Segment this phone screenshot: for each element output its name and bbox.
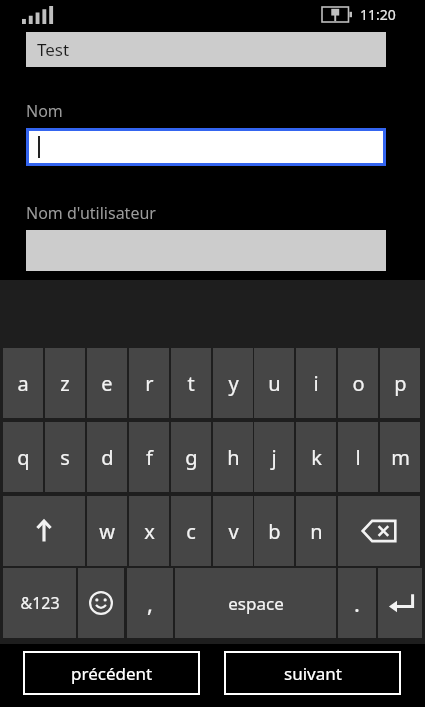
button[interactable]: d xyxy=(87,422,127,492)
button[interactable]: j xyxy=(254,422,294,492)
button[interactable]: q xyxy=(3,422,43,492)
button[interactable]: z xyxy=(45,348,85,418)
staticText: v xyxy=(228,518,239,545)
button[interactable]: k xyxy=(296,422,336,492)
staticText: i xyxy=(313,370,319,397)
button[interactable]: b xyxy=(254,496,294,566)
staticText: &123 xyxy=(20,592,60,614)
button[interactable]: x xyxy=(129,496,169,566)
button[interactable]: m xyxy=(380,422,420,492)
button[interactable]: suivant xyxy=(224,651,401,695)
button[interactable]: i xyxy=(296,348,336,418)
button[interactable]: e xyxy=(87,348,127,418)
button[interactable]: y xyxy=(213,348,253,418)
staticText: j xyxy=(271,444,277,471)
button[interactable]: r xyxy=(129,348,169,418)
staticText: o xyxy=(352,370,365,397)
staticText: u xyxy=(268,370,281,397)
staticText: k xyxy=(311,444,322,471)
button[interactable]: c xyxy=(171,496,211,566)
staticText: t xyxy=(187,370,195,397)
button[interactable]: Emoji xyxy=(78,568,124,638)
staticText: y xyxy=(228,370,239,397)
staticText: espace xyxy=(228,592,284,615)
staticText: a xyxy=(17,370,29,397)
button[interactable]: Backspace xyxy=(338,496,420,566)
staticText: e xyxy=(101,370,113,397)
button[interactable]: t xyxy=(171,348,211,418)
staticText: c xyxy=(186,518,196,545)
button[interactable]: h xyxy=(213,422,253,492)
button[interactable]: Shift xyxy=(3,496,85,566)
staticText: Test xyxy=(37,38,70,61)
staticText: précédent xyxy=(71,662,153,685)
button[interactable]: , xyxy=(127,568,173,638)
staticText: w xyxy=(99,518,115,545)
staticText: z xyxy=(60,370,70,397)
staticText: . xyxy=(354,588,360,618)
staticText: l xyxy=(355,444,361,471)
button[interactable]: Enter xyxy=(378,568,422,638)
staticText: m xyxy=(391,444,410,471)
button[interactable]: Test xyxy=(26,32,386,67)
button[interactable]: f xyxy=(129,422,169,492)
button[interactable]: g xyxy=(171,422,211,492)
button[interactable]: l xyxy=(338,422,378,492)
button[interactable]: &123 xyxy=(3,568,76,638)
staticText: h xyxy=(227,444,240,471)
button[interactable]: espace xyxy=(175,568,336,638)
button[interactable]: p xyxy=(380,348,420,418)
button[interactable]: . xyxy=(338,568,376,638)
staticText: g xyxy=(185,444,198,471)
button[interactable]: v xyxy=(213,496,253,566)
staticText: suivant xyxy=(284,662,342,685)
staticText: r xyxy=(145,370,154,397)
staticText: b xyxy=(268,518,281,545)
staticText: Nom xyxy=(26,100,63,122)
button[interactable] xyxy=(29,131,383,163)
staticText: Nom d'utilisateur xyxy=(26,202,156,224)
button[interactable]: w xyxy=(87,496,127,566)
button[interactable]: o xyxy=(338,348,378,418)
staticText: 11:20 xyxy=(360,5,396,24)
staticText: s xyxy=(60,444,70,471)
staticText: n xyxy=(310,518,323,545)
staticText: p xyxy=(394,370,407,397)
button[interactable]: u xyxy=(254,348,294,418)
staticText: q xyxy=(17,444,30,471)
button[interactable]: a xyxy=(3,348,43,418)
button[interactable]: précédent xyxy=(23,651,200,695)
button[interactable]: s xyxy=(45,422,85,492)
staticText: x xyxy=(144,518,155,545)
staticText: d xyxy=(101,444,114,471)
button[interactable]: n xyxy=(296,496,336,566)
staticText: f xyxy=(146,444,153,471)
staticText: , xyxy=(147,588,153,618)
